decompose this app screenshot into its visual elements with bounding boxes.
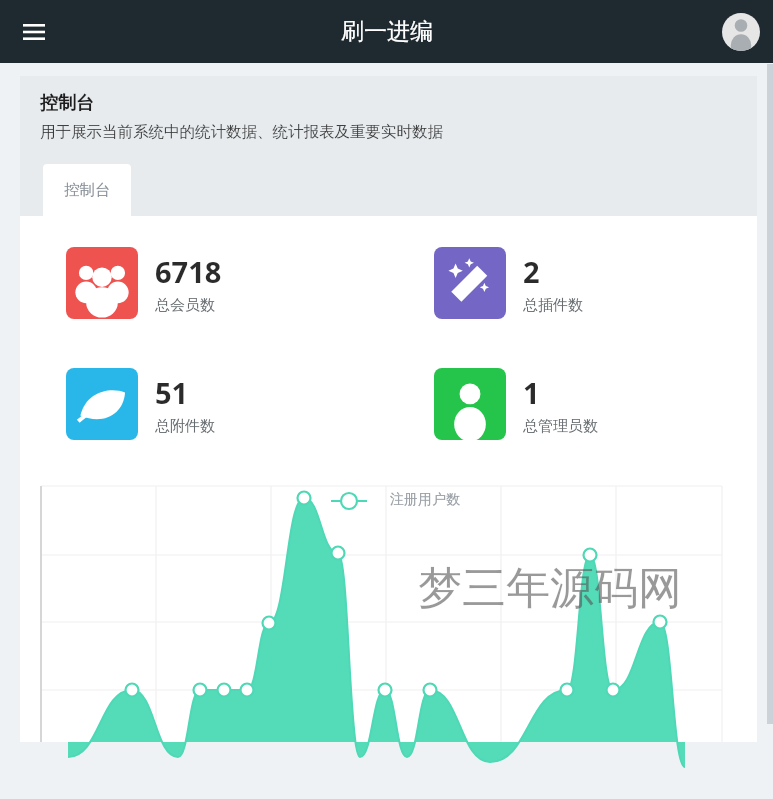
staticText: 注册用户数 bbox=[390, 491, 460, 509]
staticText: 用于展示当前系统中的统计数据、统计报表及重要实时数据 bbox=[40, 122, 443, 142]
button[interactable]: Menu bbox=[14, 12, 54, 52]
button[interactable]: 1 bbox=[434, 368, 757, 440]
staticText: 梦三年源码网 bbox=[418, 561, 682, 616]
button[interactable]: 51 bbox=[66, 368, 388, 440]
staticText: 1 bbox=[523, 373, 540, 412]
button[interactable]: 控制台 bbox=[43, 164, 131, 216]
button[interactable]: 2 bbox=[434, 247, 757, 319]
staticText: 控制台 bbox=[40, 92, 94, 115]
staticText: 总会员数 bbox=[155, 296, 215, 315]
staticText: 总管理员数 bbox=[523, 417, 598, 436]
button[interactable]: 6718 bbox=[66, 247, 388, 319]
staticText: 6718 bbox=[155, 252, 222, 291]
button[interactable]: Profile bbox=[722, 13, 760, 51]
staticText: 刷一进编 bbox=[341, 17, 433, 46]
staticText: 51 bbox=[155, 373, 189, 412]
staticText: 控制台 bbox=[64, 180, 111, 200]
staticText: 总插件数 bbox=[523, 296, 583, 315]
staticText: 总附件数 bbox=[155, 417, 215, 436]
staticText: 2 bbox=[523, 252, 540, 291]
